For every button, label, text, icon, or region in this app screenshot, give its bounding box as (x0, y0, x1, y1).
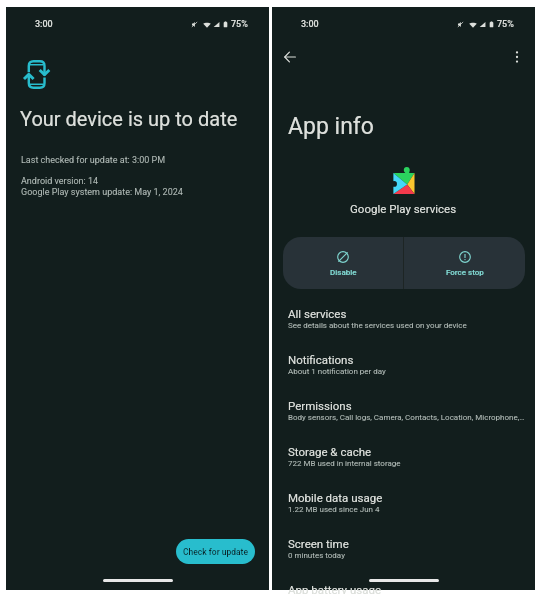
staticText: 75% (497, 19, 514, 30)
staticText: Screen time (288, 537, 349, 550)
staticText: Permissions (288, 399, 352, 412)
staticText: See details about the services used on y… (288, 321, 467, 330)
staticText: Disable (330, 268, 357, 277)
button[interactable]: Notifications (272, 353, 535, 399)
staticText: Google Play services (350, 202, 457, 215)
button[interactable]: Mobile data usage (272, 491, 535, 537)
staticText: 3:00 (301, 19, 319, 30)
button[interactable]: Storage & cache (272, 445, 535, 491)
button[interactable]: Disable (283, 237, 403, 289)
staticText: Android version: 14 (21, 176, 99, 187)
staticText: Force stop (446, 268, 484, 277)
staticText: Last checked for update at: 3:00 PM (21, 155, 166, 166)
staticText: Storage & cache (288, 445, 372, 458)
button[interactable]: More options (505, 45, 529, 69)
staticText: Body sensors, Call logs, Camera, Contact… (288, 413, 525, 422)
staticText: 3:00 (35, 19, 53, 30)
button[interactable]: App battery usage (272, 583, 535, 594)
staticText: Notifications (288, 353, 354, 366)
staticText: Mobile data usage (288, 491, 383, 504)
staticText: Google Play system update: May 1, 2024 (21, 187, 183, 198)
staticText: Check for update (183, 547, 249, 557)
staticText: 722 MB used in internal storage (288, 459, 401, 468)
button[interactable]: Check for update (176, 539, 255, 564)
staticText: 75% (231, 19, 248, 30)
staticText: All services (288, 307, 347, 320)
staticText: Your device is up to date (20, 107, 238, 130)
staticText: 1.22 MB used since Jun 4 (288, 505, 380, 514)
button[interactable]: Back (278, 45, 302, 69)
staticText: App info (288, 113, 374, 140)
button[interactable]: Force stop (404, 237, 525, 289)
staticText: About 1 notification per day (288, 367, 386, 376)
button[interactable]: Permissions (272, 399, 535, 445)
staticText: App battery usage (288, 583, 381, 594)
button[interactable]: All services (272, 307, 535, 353)
staticText: 0 minutes today (288, 551, 345, 560)
button[interactable]: Screen time (272, 537, 535, 583)
